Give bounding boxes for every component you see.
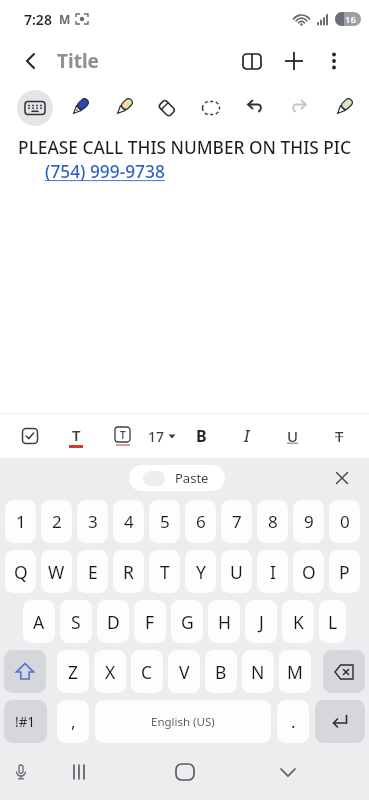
button[interactable]: N [242, 650, 274, 693]
staticText: U [287, 426, 299, 446]
button[interactable] [273, 757, 303, 787]
button[interactable]: 1 [5, 500, 36, 543]
button[interactable] [9, 38, 53, 84]
staticText: E [88, 560, 98, 584]
staticText: I [270, 560, 276, 584]
staticText: G [181, 610, 194, 634]
staticText: 4 [124, 510, 134, 533]
staticText: L [328, 610, 338, 634]
button[interactable]: H [208, 600, 240, 643]
button[interactable]: K [282, 600, 314, 643]
button[interactable] [274, 38, 314, 84]
button[interactable] [10, 416, 50, 456]
button[interactable] [319, 38, 349, 84]
staticText: 9 [304, 510, 314, 533]
button[interactable]: F [134, 600, 166, 643]
button[interactable]: G [171, 600, 203, 643]
button[interactable] [170, 757, 200, 787]
staticText: U [230, 560, 243, 584]
button[interactable]: E [77, 550, 108, 593]
button[interactable] [323, 88, 363, 128]
button[interactable]: 7 [221, 500, 252, 543]
staticText: P [339, 560, 350, 584]
staticText: X [105, 660, 116, 684]
staticText: Q [14, 560, 28, 584]
button[interactable]: V [168, 650, 200, 693]
staticText: T [72, 425, 81, 445]
button[interactable] [235, 88, 275, 128]
button[interactable]: (754) 999-9738 [45, 160, 165, 184]
button[interactable] [279, 88, 319, 128]
button[interactable]: X [94, 650, 126, 693]
staticText: T [120, 428, 126, 442]
button[interactable] [6, 757, 36, 787]
button[interactable]: 9 [293, 500, 324, 543]
button[interactable]: English (US) [95, 700, 271, 743]
button[interactable]: U [273, 416, 313, 456]
button[interactable]: . [277, 700, 309, 743]
button[interactable]: T [56, 416, 96, 456]
button[interactable]: I [227, 416, 267, 456]
staticText: English (US) [151, 714, 215, 730]
button[interactable]: J [245, 600, 277, 643]
button[interactable] [4, 650, 46, 693]
staticText: R [123, 560, 134, 584]
button[interactable]: M [279, 650, 311, 693]
button[interactable]: , [57, 700, 89, 743]
staticText: M [59, 11, 71, 27]
button[interactable]: W [41, 550, 72, 593]
staticText: V [179, 660, 190, 684]
button[interactable]: B [181, 416, 221, 456]
button[interactable]: 5 [149, 500, 180, 543]
button[interactable]: Paste [129, 465, 225, 491]
button[interactable]: T [319, 416, 359, 456]
button[interactable]: 4 [113, 500, 144, 543]
staticText: 5 [160, 510, 170, 533]
staticText: 7:28 [24, 10, 52, 29]
button[interactable]: T [149, 550, 180, 593]
button[interactable]: 8 [257, 500, 288, 543]
staticText: 16 [345, 13, 356, 26]
staticText: M [287, 660, 303, 684]
button[interactable]: 3 [77, 500, 108, 543]
staticText: B [196, 425, 207, 447]
staticText: 3 [88, 510, 98, 533]
button[interactable]: 6 [185, 500, 216, 543]
button[interactable]: P [329, 550, 360, 593]
button[interactable]: Q [5, 550, 36, 593]
staticText: 2 [52, 510, 62, 533]
button[interactable]: A [23, 600, 55, 643]
button[interactable] [15, 88, 55, 128]
button[interactable]: I [257, 550, 288, 593]
button[interactable]: 2 [41, 500, 72, 543]
button[interactable]: !#1 [4, 700, 47, 743]
staticText: T [160, 560, 170, 584]
button[interactable]: R [113, 550, 144, 593]
button[interactable]: D [97, 600, 129, 643]
button[interactable]: U [221, 550, 252, 593]
button[interactable] [103, 88, 143, 128]
button[interactable]: L [319, 600, 346, 643]
button[interactable] [315, 700, 365, 743]
button[interactable] [147, 88, 187, 128]
staticText: O [302, 560, 316, 584]
button[interactable] [323, 650, 365, 693]
staticText: PLEASE CALL THIS NUMBER ON THIS PIC [0, 136, 369, 160]
staticText: 7 [232, 510, 242, 533]
button[interactable] [329, 465, 355, 491]
button[interactable] [232, 38, 272, 84]
button[interactable] [59, 88, 99, 128]
staticText: S [71, 610, 81, 634]
button[interactable] [191, 88, 231, 128]
button[interactable]: S [60, 600, 92, 643]
button[interactable]: B [205, 650, 237, 693]
button[interactable]: O [293, 550, 324, 593]
button[interactable]: C [131, 650, 163, 693]
button[interactable]: 17 [148, 416, 176, 456]
button[interactable]: Y [185, 550, 216, 593]
button[interactable]: Z [57, 650, 89, 693]
button[interactable]: T [102, 416, 142, 456]
button[interactable] [65, 757, 95, 787]
staticText: A [33, 610, 45, 634]
button[interactable]: 0 [329, 500, 360, 543]
